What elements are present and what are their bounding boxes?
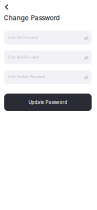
button[interactable]: Enter New Password [4, 50, 92, 64]
staticText: Enter New Password [8, 56, 39, 59]
button[interactable]: Enter Confirm Password [4, 70, 92, 84]
button[interactable]: Back [0, 0, 14, 14]
staticText: Enter Old Password [8, 36, 38, 39]
button[interactable]: Enter Old Password [4, 31, 92, 44]
staticText: Update Password [28, 100, 67, 105]
staticText: Change Password [4, 14, 60, 22]
staticText: Enter Confirm Password [8, 75, 45, 79]
button[interactable]: Update Password [4, 94, 92, 111]
